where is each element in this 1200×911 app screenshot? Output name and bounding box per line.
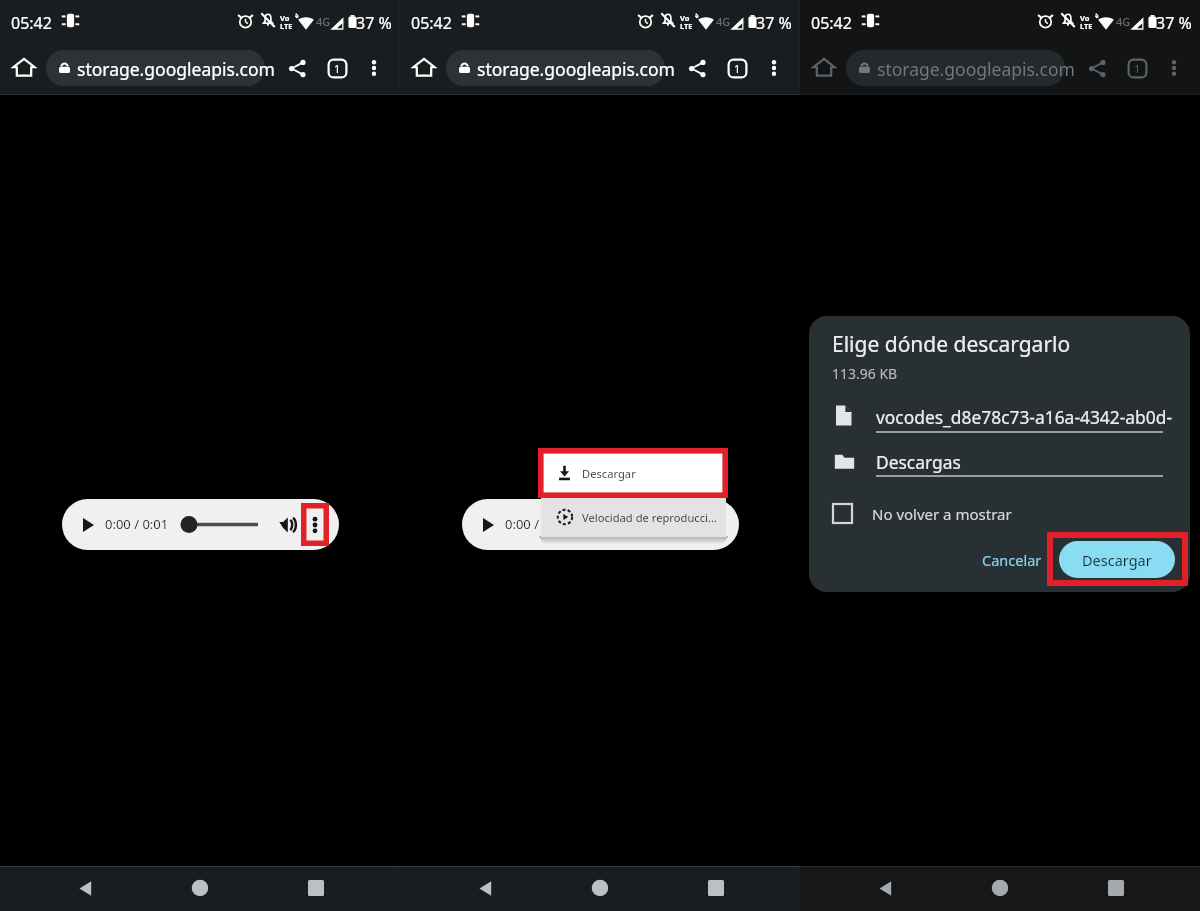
staticText: storage.googleapis.com xyxy=(877,57,1075,81)
button[interactable]: Mute xyxy=(674,512,699,537)
staticText: Elige dónde descargarlo xyxy=(832,330,1071,359)
staticText: storage.googleapis.com xyxy=(477,57,675,81)
button[interactable]: Share xyxy=(681,52,713,84)
button[interactable]: storage.googleapis.com xyxy=(446,50,665,86)
staticText: 113.96 KB xyxy=(832,364,898,383)
staticText: 4G xyxy=(1116,14,1131,29)
staticText: Descargas xyxy=(876,450,961,474)
staticText: 05:42 xyxy=(11,12,52,34)
button[interactable]: Cancelar xyxy=(972,543,1052,577)
staticText: LTE xyxy=(1080,21,1093,31)
button[interactable]: More options xyxy=(1158,52,1190,84)
staticText: 37 % xyxy=(356,12,392,34)
button[interactable]: Home xyxy=(176,864,224,911)
staticText: 0:00 / 0:01 xyxy=(105,515,169,533)
button[interactable]: Home xyxy=(408,51,440,83)
button[interactable]: Share xyxy=(281,52,313,84)
button[interactable]: Home xyxy=(8,51,40,83)
staticText: Vo xyxy=(280,13,290,23)
button[interactable]: Tabs xyxy=(1121,52,1153,84)
staticText: LTE xyxy=(680,21,693,31)
button[interactable]: More options xyxy=(302,512,327,537)
staticText: storage.googleapis.com xyxy=(77,57,275,81)
button[interactable]: Back xyxy=(861,864,909,911)
button[interactable]: Play xyxy=(475,512,501,538)
staticText: 05:42 xyxy=(811,12,852,34)
button[interactable]: Share xyxy=(1081,52,1113,84)
staticText: 1 xyxy=(334,61,341,76)
button[interactable]: Descargar xyxy=(1059,541,1175,578)
button[interactable]: Home xyxy=(576,864,624,911)
staticText: 0:00 / 0:01 xyxy=(505,515,569,533)
staticText: 37 % xyxy=(1156,12,1192,34)
staticText: Descargar xyxy=(582,466,636,481)
staticText: Cancelar xyxy=(982,550,1042,570)
button[interactable]: Descargar xyxy=(543,452,725,494)
button[interactable]: More options xyxy=(758,52,790,84)
button[interactable]: Back xyxy=(61,864,109,911)
staticText: 05:42 xyxy=(411,12,452,34)
button[interactable]: Recent apps xyxy=(292,864,340,911)
button[interactable]: Recent apps xyxy=(692,864,740,911)
staticText: 1 xyxy=(1134,61,1141,76)
staticText: 4G xyxy=(716,14,731,29)
staticText: Vo xyxy=(1080,13,1090,23)
staticText: vocodes_d8e78c73-a16a-4342-ab0d- xyxy=(876,405,1173,429)
staticText: 37 % xyxy=(756,12,792,34)
staticText: Vo xyxy=(680,13,690,23)
button[interactable]: Seek xyxy=(580,512,658,537)
button[interactable]: Home xyxy=(976,864,1024,911)
button[interactable]: Back xyxy=(461,864,509,911)
button[interactable]: storage.googleapis.com xyxy=(46,50,265,86)
button[interactable]: Recent apps xyxy=(1092,864,1140,911)
staticText: LTE xyxy=(280,21,293,31)
staticText: 4G xyxy=(316,14,331,29)
button[interactable]: Play xyxy=(75,512,101,538)
button[interactable]: Tabs xyxy=(321,52,353,84)
button[interactable]: Seek xyxy=(180,512,258,537)
button[interactable]: More options xyxy=(358,52,390,84)
button[interactable]: Tabs xyxy=(721,52,753,84)
button[interactable]: Mute xyxy=(274,512,299,537)
staticText: 1 xyxy=(734,61,741,76)
staticText: Velocidad de reproducci... xyxy=(582,510,717,525)
button[interactable]: Velocidad de reproducci... xyxy=(541,497,726,537)
staticText: Descargar xyxy=(1082,550,1152,570)
button[interactable]: storage.googleapis.com xyxy=(846,50,1065,86)
button[interactable]: Home xyxy=(808,51,840,83)
staticText: No volver a mostrar xyxy=(872,504,1012,524)
button[interactable]: No volver a mostrar xyxy=(833,500,1012,527)
